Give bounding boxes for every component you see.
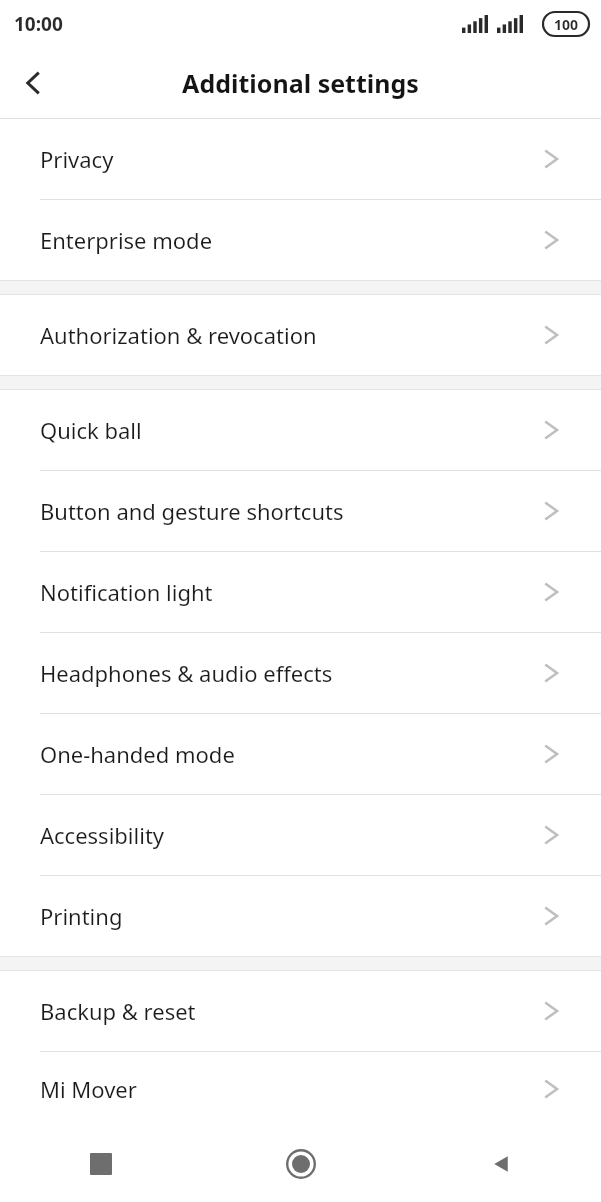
button[interactable]: Mi Mover xyxy=(0,1052,601,1125)
staticText: Privacy xyxy=(40,144,543,174)
button[interactable]: Back xyxy=(401,1125,601,1202)
button[interactable]: Backup & reset xyxy=(0,971,601,1051)
button[interactable]: Button and gesture shortcuts xyxy=(0,471,601,551)
button[interactable]: Accessibility xyxy=(0,795,601,875)
button[interactable]: Recents xyxy=(0,1125,201,1202)
button[interactable]: Printing xyxy=(0,876,601,956)
button[interactable]: Headphones & audio effects xyxy=(0,633,601,713)
button[interactable]: Home xyxy=(201,1125,401,1202)
staticText: 10:00 xyxy=(14,11,63,37)
staticText: Enterprise mode xyxy=(40,225,543,255)
button[interactable]: Quick ball xyxy=(0,390,601,470)
button[interactable]: Enterprise mode xyxy=(0,200,601,280)
staticText: Headphones & audio effects xyxy=(40,658,543,688)
staticText: Printing xyxy=(40,901,543,931)
staticText: Notification light xyxy=(40,577,543,607)
staticText: Additional settings xyxy=(182,66,419,100)
button[interactable]: Back xyxy=(0,50,66,116)
staticText: Authorization & revocation xyxy=(40,320,543,350)
button[interactable]: Authorization & revocation xyxy=(0,295,601,375)
button[interactable]: One-handed mode xyxy=(0,714,601,794)
staticText: Quick ball xyxy=(40,415,543,445)
staticText: Mi Mover xyxy=(40,1074,543,1104)
button[interactable]: Notification light xyxy=(0,552,601,632)
staticText: Backup & reset xyxy=(40,996,543,1026)
staticText: 100 xyxy=(554,15,579,34)
staticText: Button and gesture shortcuts xyxy=(40,496,543,526)
staticText: One-handed mode xyxy=(40,739,543,769)
staticText: Accessibility xyxy=(40,820,543,850)
button[interactable]: Privacy xyxy=(0,119,601,199)
